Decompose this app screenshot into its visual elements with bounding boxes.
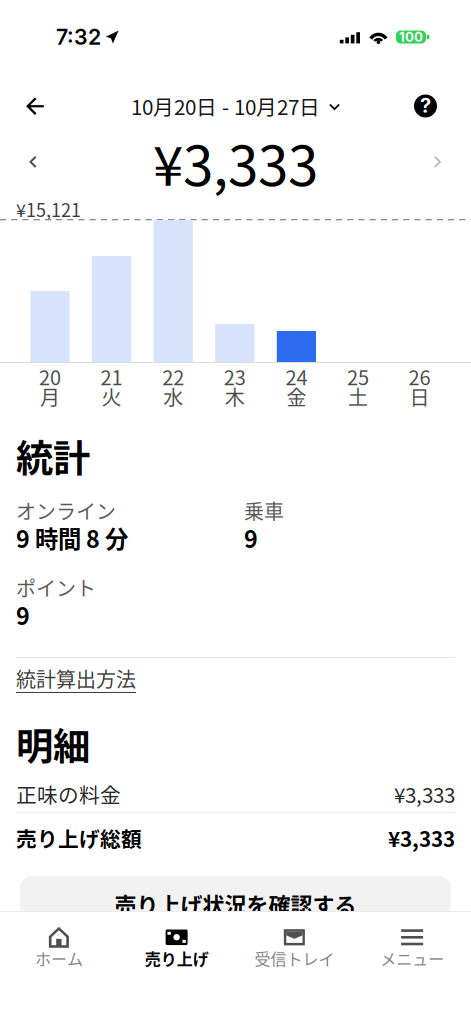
button[interactable]: 受信トレイ: [235, 912, 353, 987]
button[interactable]: 売り上げ状況を確認する: [20, 876, 451, 932]
staticText: ?: [420, 93, 431, 118]
staticText: 23: [224, 362, 246, 391]
staticText: ポイント: [16, 573, 96, 602]
button[interactable]: メニュー: [353, 912, 471, 987]
staticText: 土: [348, 382, 368, 411]
button[interactable]: 売り上げ: [118, 912, 236, 987]
staticText: 金: [286, 382, 306, 411]
staticText: 統計: [16, 429, 90, 483]
staticText: ¥15,121: [16, 196, 81, 222]
staticText: 木: [225, 382, 245, 411]
staticText: 統計算出方法: [16, 664, 136, 693]
staticText: 受信トレイ: [254, 947, 334, 970]
staticText: ホーム: [35, 947, 83, 970]
staticText: 明細: [16, 717, 90, 771]
button[interactable]: 10月20日 - 10月27日: [127, 83, 344, 129]
staticText: 月: [40, 382, 60, 411]
staticText: 10月20日 - 10月27日: [131, 91, 320, 121]
staticText: 22: [162, 362, 184, 391]
staticText: 20: [39, 362, 61, 391]
staticText: 乗車: [244, 496, 284, 525]
staticText: 24: [285, 362, 307, 391]
staticText: 7:32: [56, 24, 101, 50]
staticText: 売り上げ状況を確認する: [114, 888, 356, 920]
staticText: 21: [101, 362, 123, 391]
staticText: ¥3,333: [388, 823, 455, 853]
button[interactable]: ホーム: [0, 912, 118, 987]
staticText: 9: [244, 521, 258, 555]
staticText: 9: [16, 598, 30, 632]
staticText: 26: [409, 362, 431, 391]
button[interactable]: 統計算出方法: [16, 654, 136, 703]
staticText: 100: [399, 29, 423, 45]
staticText: ¥3,333: [153, 122, 318, 202]
button[interactable]: 次の週: [418, 142, 459, 182]
button[interactable]: 前の週: [12, 142, 53, 182]
staticText: 売り上げ総額: [16, 823, 142, 853]
staticText: ¥3,333: [394, 779, 455, 809]
staticText: 日: [410, 382, 430, 411]
staticText: 水: [163, 382, 183, 411]
staticText: 25: [347, 362, 369, 391]
staticText: 正味の料金: [16, 779, 121, 809]
button[interactable]: ヘルプ: [404, 85, 447, 126]
staticText: 9 時間 8 分: [16, 521, 128, 555]
button[interactable]: 戻る: [14, 87, 56, 124]
staticText: メニュー: [380, 947, 444, 970]
staticText: オンライン: [16, 496, 116, 525]
staticText: 火: [102, 382, 122, 411]
staticText: 売り上げ: [145, 947, 209, 970]
